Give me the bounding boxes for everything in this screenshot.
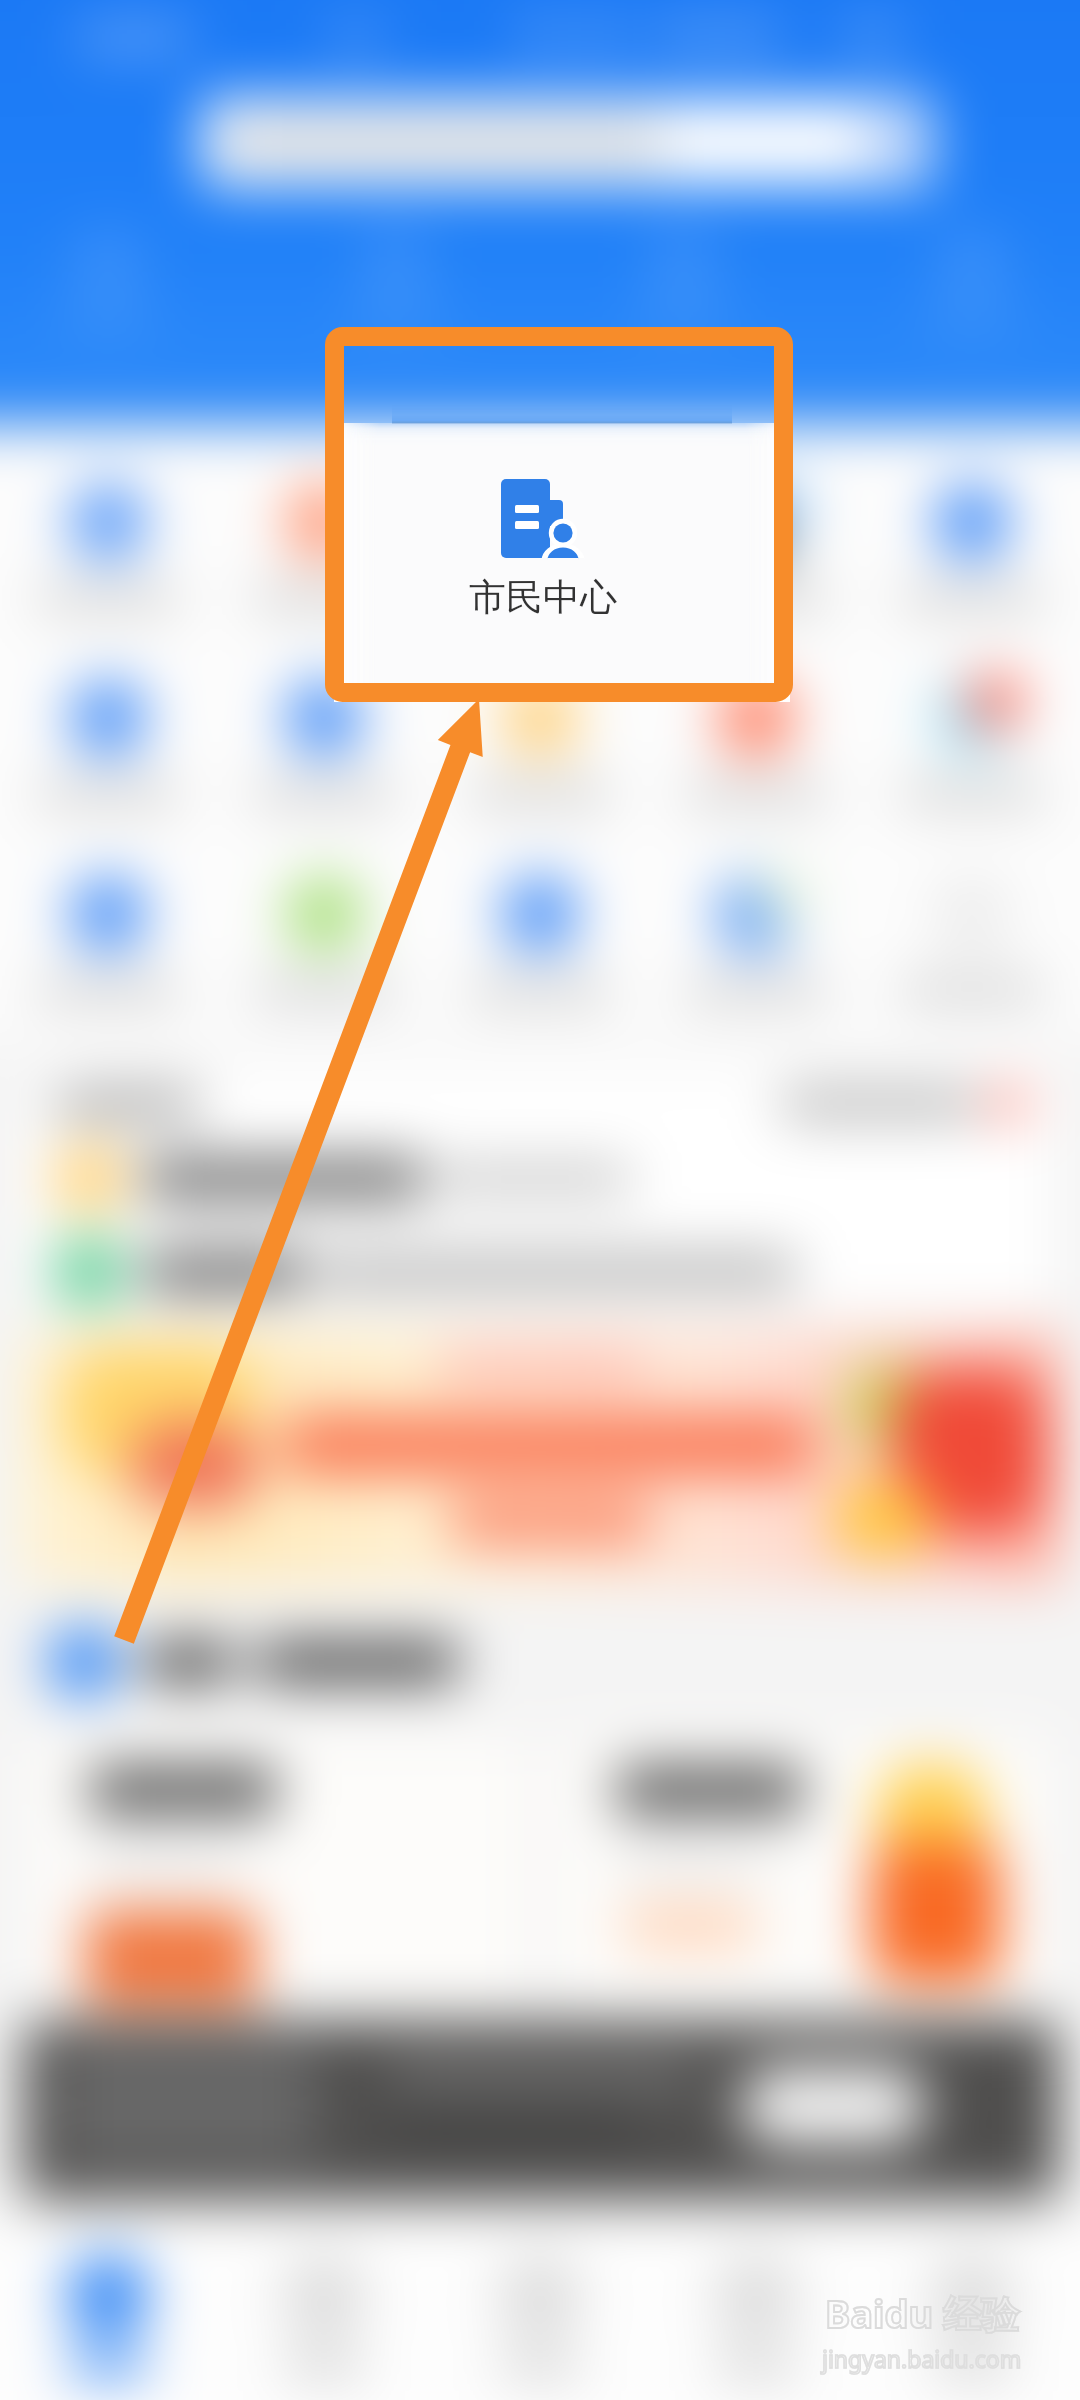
button[interactable] <box>864 2210 1080 2400</box>
button[interactable] <box>0 2210 216 2400</box>
button[interactable] <box>553 1734 1054 2006</box>
button[interactable] <box>0 872 216 1002</box>
staticText: jingyan.baidu.com <box>822 2343 1022 2374</box>
button[interactable] <box>864 480 1080 610</box>
staticText: 市民中心 <box>469 574 617 621</box>
button[interactable] <box>350 228 442 328</box>
other: Annotation highlight <box>0 0 1080 2400</box>
button[interactable] <box>216 676 432 806</box>
button[interactable] <box>432 480 648 610</box>
button[interactable] <box>24 2022 1058 2200</box>
button[interactable] <box>648 2210 864 2400</box>
button[interactable] <box>0 676 216 806</box>
staticText: Baidu 经验 <box>825 2287 1019 2339</box>
button[interactable] <box>432 2210 648 2400</box>
button[interactable] <box>648 676 864 806</box>
button[interactable] <box>432 872 648 1002</box>
button[interactable]: 市民中心 <box>334 404 790 702</box>
button[interactable] <box>26 1734 527 2006</box>
button[interactable] <box>216 872 432 1002</box>
button[interactable] <box>62 228 154 328</box>
button[interactable] <box>216 480 432 610</box>
button[interactable] <box>648 480 864 610</box>
button[interactable] <box>432 676 648 806</box>
button[interactable] <box>864 676 1080 806</box>
button[interactable] <box>638 228 730 328</box>
button[interactable] <box>18 1332 1062 1584</box>
button[interactable] <box>864 872 1080 1002</box>
button[interactable] <box>0 480 216 610</box>
button[interactable] <box>48 1626 1032 1698</box>
button[interactable] <box>648 872 864 1002</box>
button[interactable] <box>740 2066 926 2146</box>
button[interactable] <box>216 2210 432 2400</box>
button[interactable] <box>202 98 931 186</box>
button[interactable] <box>26 1064 1054 1310</box>
button[interactable] <box>926 228 1018 328</box>
